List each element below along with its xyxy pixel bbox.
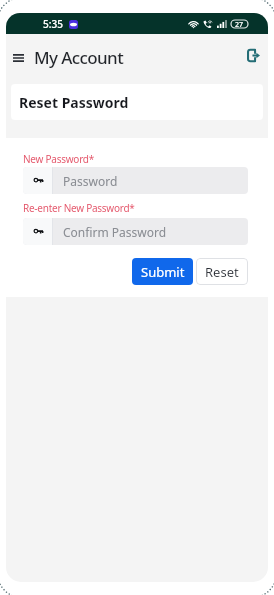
staticText: My Account [34, 46, 124, 69]
staticText: Confirm Password [63, 224, 167, 240]
button[interactable]: Logout [242, 44, 264, 66]
staticText: Re-enter New Password* [23, 201, 135, 215]
staticText: Reset [205, 263, 239, 281]
staticText: Reset Password [19, 93, 129, 112]
button[interactable]: Reset Password [11, 84, 263, 120]
button[interactable]: Submit [132, 258, 193, 285]
staticText: New Password* [23, 152, 94, 166]
button[interactable]: Reset [196, 258, 248, 285]
staticText: 5:35 [43, 17, 63, 31]
button[interactable]: Password [23, 167, 248, 194]
staticText: 27 [235, 20, 244, 28]
button[interactable]: Menu [7, 47, 29, 69]
button[interactable]: Confirm Password [23, 218, 248, 245]
staticText: Submit [141, 263, 185, 281]
staticText: Password [63, 173, 118, 189]
